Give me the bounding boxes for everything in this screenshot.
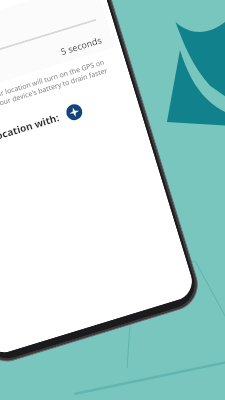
button[interactable]: Add contact to share with bbox=[64, 102, 84, 122]
button[interactable]: Update interval : bbox=[0, 0, 115, 107]
staticText: WARNING: Sharing your location will turn… bbox=[0, 54, 121, 137]
button[interactable]: Update interval slider bbox=[0, 12, 98, 81]
staticText: 5 seconds bbox=[59, 33, 104, 57]
button[interactable]: Share your location bbox=[0, 0, 100, 39]
staticText: Share your location with: bbox=[0, 110, 61, 160]
